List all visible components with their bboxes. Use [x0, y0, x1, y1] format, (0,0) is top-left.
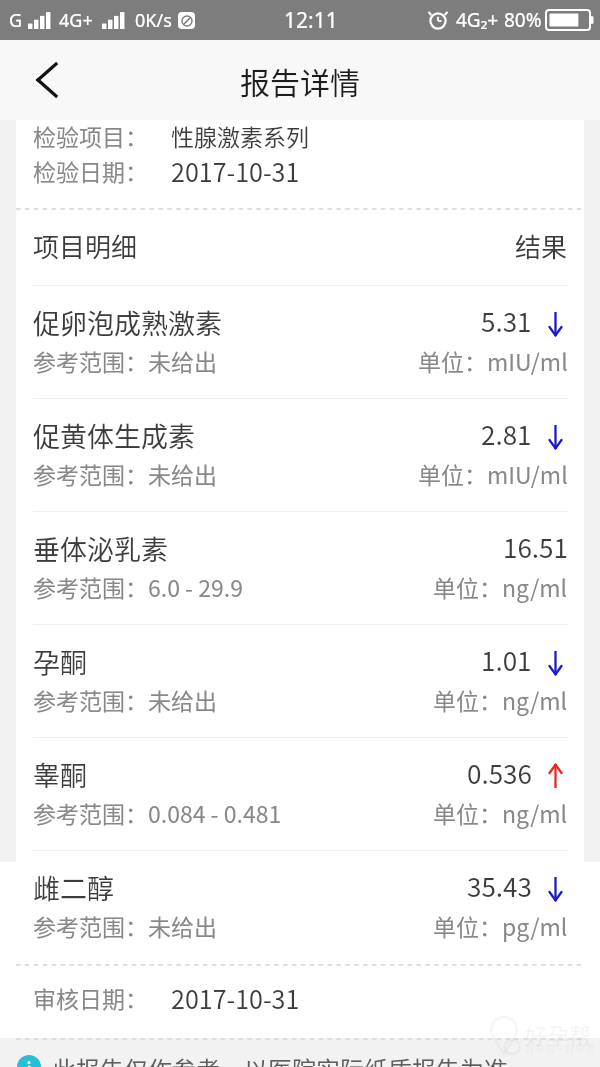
staticText: 垂体泌乳素 — [33, 529, 168, 568]
button[interactable]: 促卵泡成熟激素 — [16, 285, 584, 398]
staticText: 80% — [504, 7, 542, 33]
staticText: 1.01 — [481, 641, 532, 679]
staticText: 参考范围：0.084 - 0.481 — [33, 796, 282, 829]
staticText: 此报告仅作参考，以医院实际纸质报告为准 — [52, 1051, 508, 1067]
staticText: 性腺激素系列 — [171, 119, 309, 152]
button[interactable]: 促黄体生成素 — [16, 398, 584, 511]
staticText: 2017-10-31 — [171, 153, 300, 189]
button[interactable]: 雌二醇 — [16, 850, 584, 963]
staticText: 项目明细 — [33, 227, 138, 265]
staticText: 雌二醇 — [33, 868, 114, 907]
staticText: 4G₂+ — [456, 7, 499, 33]
staticText: 单位：ng/ml — [433, 570, 568, 603]
staticText: 2017-10-31 — [171, 980, 300, 1016]
staticText: 参考范围：未给出 — [33, 683, 217, 716]
staticText: 促卵泡成熟激素 — [33, 303, 222, 342]
staticText: 单位：mIU/ml — [418, 457, 568, 490]
staticText: 检验项目： — [33, 119, 148, 152]
staticText: 35.43 — [467, 867, 532, 905]
staticText: 0.536 — [467, 754, 532, 792]
staticText: G — [9, 8, 23, 33]
staticText: 检验日期： — [33, 154, 148, 187]
button[interactable]: 垂体泌乳素 — [16, 511, 584, 624]
staticText: 孕酮 — [33, 642, 87, 681]
staticText: 结果 — [515, 227, 568, 265]
button[interactable]: 孕酮 — [16, 624, 584, 737]
staticText: 好孕帮 — [525, 1018, 592, 1050]
staticText: 16.51 — [503, 528, 568, 566]
staticText: 单位：ng/ml — [433, 683, 568, 716]
staticText: 参考范围：6.0 - 29.9 — [33, 570, 243, 603]
staticText: 好孕帮·好孕帮 — [525, 1041, 595, 1055]
staticText: 睾酮 — [33, 755, 87, 794]
staticText: 参考范围：未给出 — [33, 457, 217, 490]
staticText: 5.31 — [481, 302, 532, 340]
staticText: 审核日期： — [33, 981, 148, 1014]
staticText: 参考范围：未给出 — [33, 344, 217, 377]
staticText: 2.81 — [481, 415, 532, 453]
staticText: 4G+ — [59, 8, 93, 33]
button[interactable]: Back — [9, 40, 85, 120]
staticText: 单位：pg/ml — [433, 909, 568, 942]
staticText: 促黄体生成素 — [33, 416, 195, 455]
staticText: 12:11 — [284, 6, 338, 35]
staticText: 报告详情 — [240, 59, 360, 102]
staticText: 单位：ng/ml — [433, 796, 568, 829]
staticText: 0K/s — [135, 8, 172, 33]
button[interactable]: 睾酮 — [16, 737, 584, 850]
staticText: 单位：mIU/ml — [418, 344, 568, 377]
staticText: 参考范围：未给出 — [33, 909, 217, 942]
